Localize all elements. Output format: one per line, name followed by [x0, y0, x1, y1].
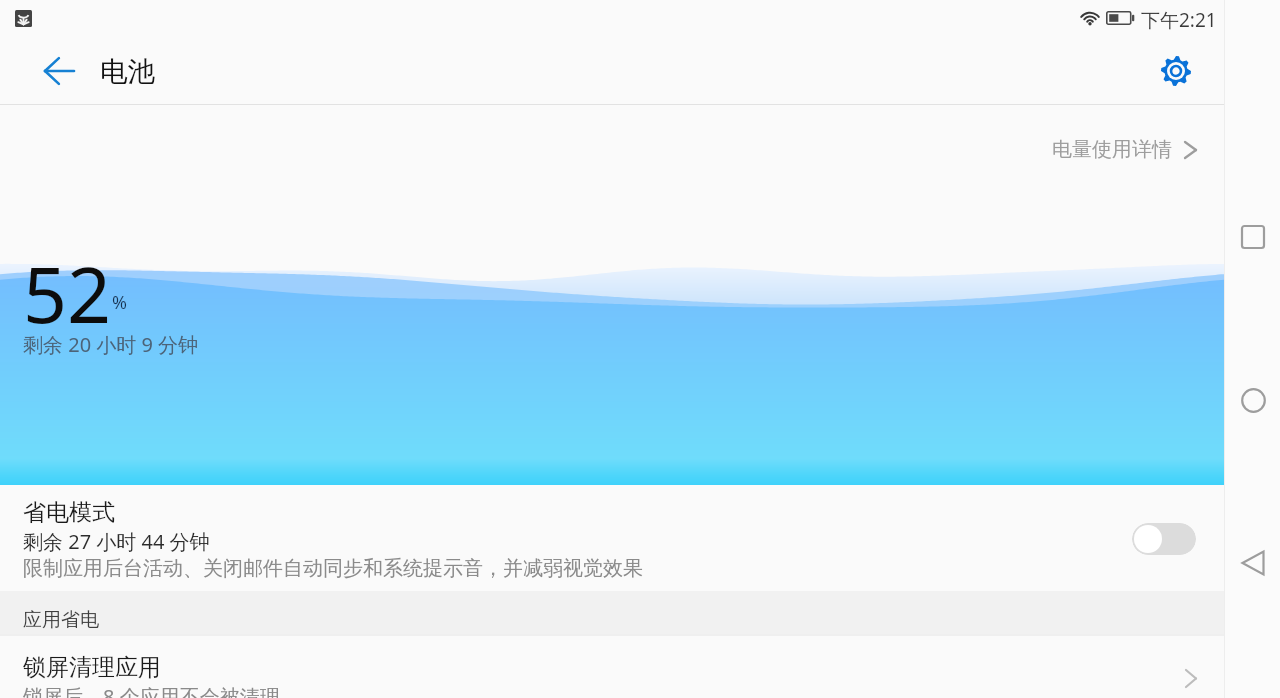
button[interactable]: Home: [1227, 374, 1279, 426]
staticText: 省电模式: [23, 498, 115, 527]
staticText: 剩余 27 小时 44 分钟: [23, 528, 210, 555]
button[interactable]: Power saving mode toggle: [1132, 523, 1196, 555]
button[interactable]: 锁屏清理应用: [0, 634, 1224, 698]
staticText: 应用省电: [23, 608, 99, 632]
staticText: 锁屏清理应用: [23, 653, 161, 682]
staticText: 剩余 20 小时 9 分钟: [23, 331, 199, 358]
staticText: 52: [23, 241, 112, 346]
button[interactable]: 省电模式: [0, 485, 1224, 591]
staticText: 下午2:21: [1141, 7, 1217, 33]
staticText: 锁屏后，8 个应用不会被清理: [23, 683, 280, 698]
staticText: %: [112, 290, 127, 315]
button[interactable]: 电量使用详情: [1046, 129, 1203, 170]
staticText: 限制应用后台活动、关闭邮件自动同步和系统提示音，并减弱视觉效果: [23, 556, 643, 581]
button[interactable]: Recent apps: [1227, 211, 1279, 263]
button[interactable]: Back: [35, 47, 83, 95]
staticText: 电量使用详情: [1052, 137, 1172, 162]
staticText: 电池: [100, 55, 155, 90]
button[interactable]: Settings: [1152, 47, 1200, 95]
button[interactable]: Open: [1185, 669, 1197, 688]
button[interactable]: Back: [1227, 537, 1279, 589]
